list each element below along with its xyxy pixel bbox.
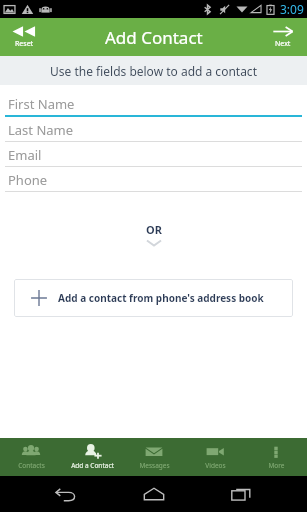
staticText: Add Contact xyxy=(105,26,203,49)
button[interactable]: Messages xyxy=(124,438,184,476)
button[interactable]: Reset xyxy=(0,21,48,53)
button[interactable]: Next xyxy=(259,21,307,53)
button[interactable]: First Name xyxy=(5,93,302,119)
button[interactable]: Back xyxy=(44,476,88,512)
staticText: Use the fields below to add a contact xyxy=(50,63,257,79)
staticText: Next xyxy=(275,39,291,49)
button[interactable]: More xyxy=(246,438,306,476)
staticText: Add a contact from phone's address book xyxy=(58,291,264,305)
button[interactable]: Home xyxy=(132,476,176,512)
button[interactable]: Last Name xyxy=(5,119,302,144)
button[interactable]: Phone xyxy=(5,169,302,194)
staticText: OR xyxy=(146,222,162,237)
staticText: Videos xyxy=(205,461,226,470)
staticText: More xyxy=(268,461,285,470)
staticText: Phone xyxy=(8,171,48,189)
button[interactable]: Videos xyxy=(185,438,245,476)
staticText: 3:09 xyxy=(280,1,304,17)
staticText: Email xyxy=(8,146,42,164)
staticText: Reset xyxy=(15,39,34,49)
staticText: First Name xyxy=(8,95,75,113)
staticText: Last Name xyxy=(8,121,74,139)
staticText: Contacts xyxy=(18,461,45,470)
staticText: Add a Contact xyxy=(71,461,114,470)
button[interactable]: Add a Contact xyxy=(62,438,122,476)
staticText: Messages xyxy=(139,461,170,470)
button[interactable]: Email xyxy=(5,144,302,169)
button[interactable]: Recents xyxy=(219,476,263,512)
button[interactable]: Contacts xyxy=(1,438,61,476)
button[interactable]: Add a contact from phone's address book xyxy=(14,279,293,317)
